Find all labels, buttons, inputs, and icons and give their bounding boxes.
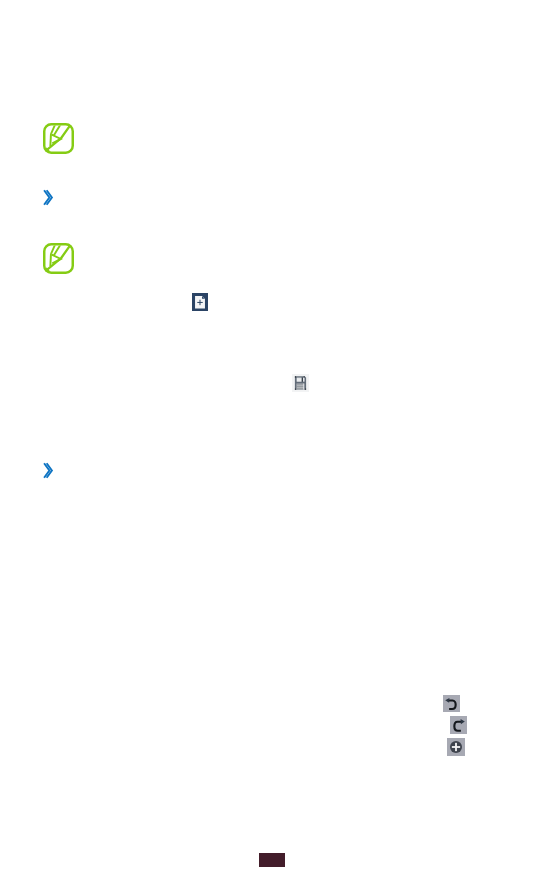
button[interactable]: Undo	[443, 695, 460, 712]
button[interactable]: More	[43, 189, 54, 206]
button[interactable]: S Note	[43, 243, 74, 274]
button[interactable]: Save	[292, 374, 309, 392]
button[interactable]: More	[43, 462, 54, 479]
button[interactable]: Redo	[450, 716, 467, 734]
button[interactable]: New document	[192, 293, 208, 311]
button[interactable]: S Note	[43, 123, 74, 154]
button[interactable]: Add	[447, 738, 465, 756]
